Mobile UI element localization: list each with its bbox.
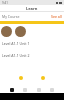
button[interactable]: Nav: [10, 88, 14, 92]
staticText: Learn: [26, 6, 38, 11]
button[interactable]: Nav: [23, 88, 27, 92]
staticText: See all: [51, 14, 62, 19]
button[interactable]: [1, 26, 12, 37]
button[interactable]: Nav: [37, 88, 41, 92]
button[interactable]: Nav: [50, 88, 54, 92]
staticText: My Course: [2, 14, 20, 19]
staticText: Level A1-1 Unit 1: [2, 41, 30, 46]
button[interactable]: [15, 26, 26, 37]
staticText: Level A1-1 Unit 2: [2, 53, 30, 58]
staticText: 9:41: [2, 1, 8, 5]
